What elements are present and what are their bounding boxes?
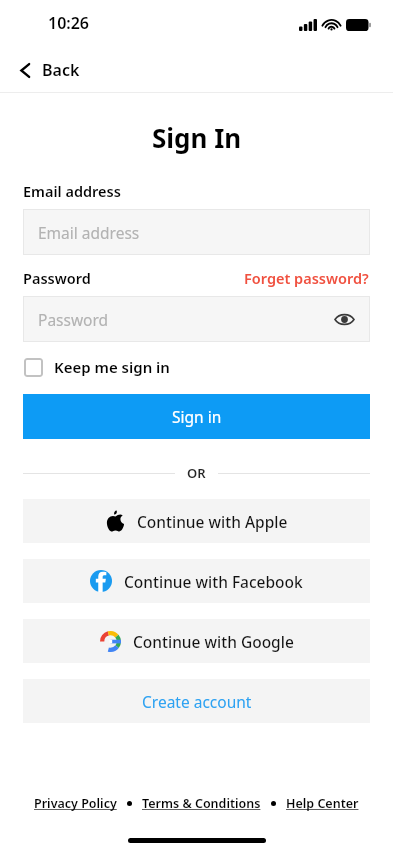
staticText: Forget password?: [244, 268, 369, 288]
button[interactable]: Back: [0, 48, 393, 92]
staticText: Sign In: [152, 120, 242, 155]
button[interactable]: Forget password?: [244, 268, 369, 288]
staticText: Password: [38, 309, 109, 330]
staticText: 10:26: [48, 12, 90, 34]
button[interactable]: Help Center: [284, 792, 361, 815]
button[interactable]: Privacy Policy: [32, 792, 119, 815]
staticText: Back: [42, 59, 80, 81]
staticText: Continue with Apple: [137, 511, 288, 532]
staticText: Help Center: [286, 795, 359, 812]
staticText: Continue with Google: [133, 631, 294, 652]
button[interactable]: Continue with Facebook: [23, 559, 370, 603]
staticText: Privacy Policy: [34, 795, 117, 812]
staticText: Keep me sign in: [54, 357, 170, 377]
staticText: Email address: [38, 222, 140, 243]
button[interactable]: Sign in: [23, 394, 370, 439]
staticText: Create account: [142, 691, 252, 712]
other: Back: [19, 62, 32, 79]
button[interactable]: Create account: [23, 679, 370, 723]
button[interactable]: Password: [23, 296, 370, 342]
staticText: Password: [23, 268, 91, 288]
button[interactable]: Show password: [332, 307, 356, 331]
staticText: Sign in: [172, 406, 222, 427]
button[interactable]: Keep me sign in: [24, 357, 170, 377]
staticText: Continue with Facebook: [124, 571, 303, 592]
staticText: Email address: [23, 181, 121, 201]
button[interactable]: Continue with Google: [23, 619, 370, 663]
staticText: OR: [187, 464, 206, 482]
button[interactable]: Terms & Conditions: [140, 792, 263, 815]
button[interactable]: Email address: [23, 209, 370, 255]
staticText: Terms & Conditions: [142, 795, 261, 812]
button[interactable]: Continue with Apple: [23, 499, 370, 543]
